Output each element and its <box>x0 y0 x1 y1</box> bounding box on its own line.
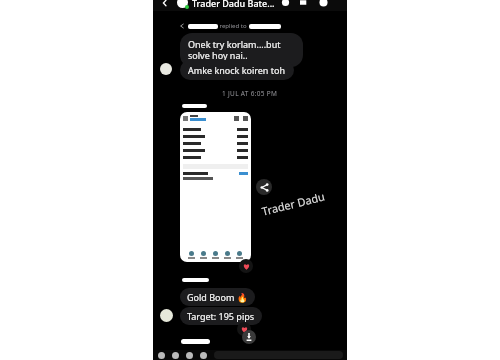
staticText: Onek try korlam....but solve hoy nai.. <box>188 38 295 62</box>
staticText: Trader Dadu Bate... <box>192 0 275 8</box>
button[interactable]: Action <box>186 352 193 359</box>
staticText: Amke knock koiren toh <box>188 64 286 76</box>
staticText: Gold Boom 🔥 <box>187 291 248 303</box>
button[interactable]: Action <box>200 352 207 359</box>
button[interactable]: Amke knock koiren toh <box>180 60 294 80</box>
staticText: Target: 195 pips <box>187 310 255 322</box>
staticText: 1 JUL AT 6:05 PM <box>222 89 278 98</box>
button[interactable]: Download <box>242 330 256 344</box>
button[interactable]: Onek try korlam....but solve hoy nai.. <box>180 33 303 67</box>
staticText: replied to <box>218 22 249 30</box>
button[interactable]: Gold Boom 🔥 <box>180 288 255 306</box>
button[interactable]: Action <box>158 352 165 359</box>
button[interactable]: Action <box>172 352 179 359</box>
button[interactable]: Share <box>256 179 272 195</box>
staticText: Trader Dadu <box>260 188 327 219</box>
button[interactable] <box>180 112 251 262</box>
other: Back <box>161 0 169 7</box>
button[interactable]: Target: 195 pips <box>180 307 262 325</box>
